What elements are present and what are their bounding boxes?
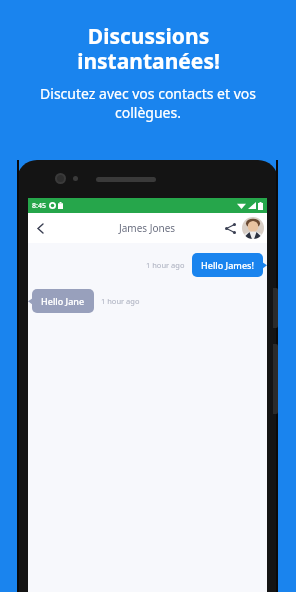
staticText: Discutez avec vos contacts et vos collèg… (40, 84, 256, 122)
button[interactable]: Share (220, 218, 240, 238)
staticText: Hello Jane (41, 295, 85, 307)
staticText: 1 hour ago (146, 260, 185, 270)
staticText: Hello James! (201, 259, 254, 271)
staticText: 8:45 (32, 201, 46, 211)
button[interactable]: Hello James! (192, 253, 263, 277)
button[interactable]: Profile photo (242, 217, 264, 239)
staticText: James Jones (119, 221, 176, 235)
button[interactable]: Back (28, 216, 52, 240)
button[interactable]: Hello Jane (32, 289, 94, 313)
staticText: Discussions instantanées! (77, 22, 220, 75)
staticText: 1 hour ago (101, 296, 140, 306)
